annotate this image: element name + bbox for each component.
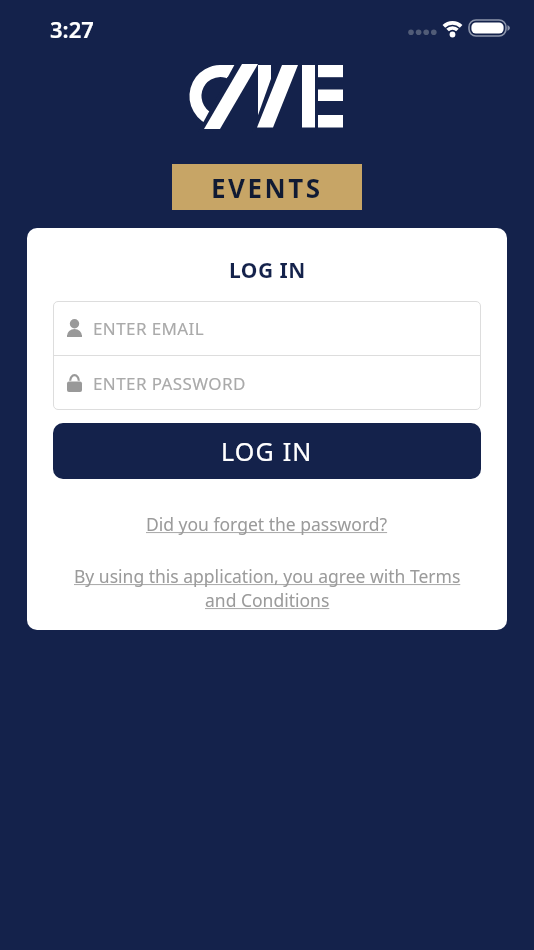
- button[interactable]: ENTER EMAIL: [53, 301, 481, 355]
- staticText: ENTER EMAIL: [93, 317, 205, 340]
- button[interactable]: Did you forget the password?: [27, 512, 507, 536]
- staticText: and Conditions: [205, 588, 330, 612]
- button[interactable]: ENTER PASSWORD: [53, 356, 481, 410]
- button[interactable]: LOG IN: [53, 423, 481, 479]
- staticText: ENTER PASSWORD: [93, 372, 246, 395]
- button[interactable]: By using this application, you agree wit…: [27, 564, 507, 612]
- staticText: Did you forget the password?: [146, 512, 388, 536]
- staticText: LOG IN: [221, 434, 313, 468]
- staticText: By using this application, you agree wit…: [74, 564, 461, 588]
- staticText: EVENTS: [211, 170, 323, 205]
- staticText: LOG IN: [229, 256, 306, 285]
- staticText: 3:27: [50, 14, 94, 44]
